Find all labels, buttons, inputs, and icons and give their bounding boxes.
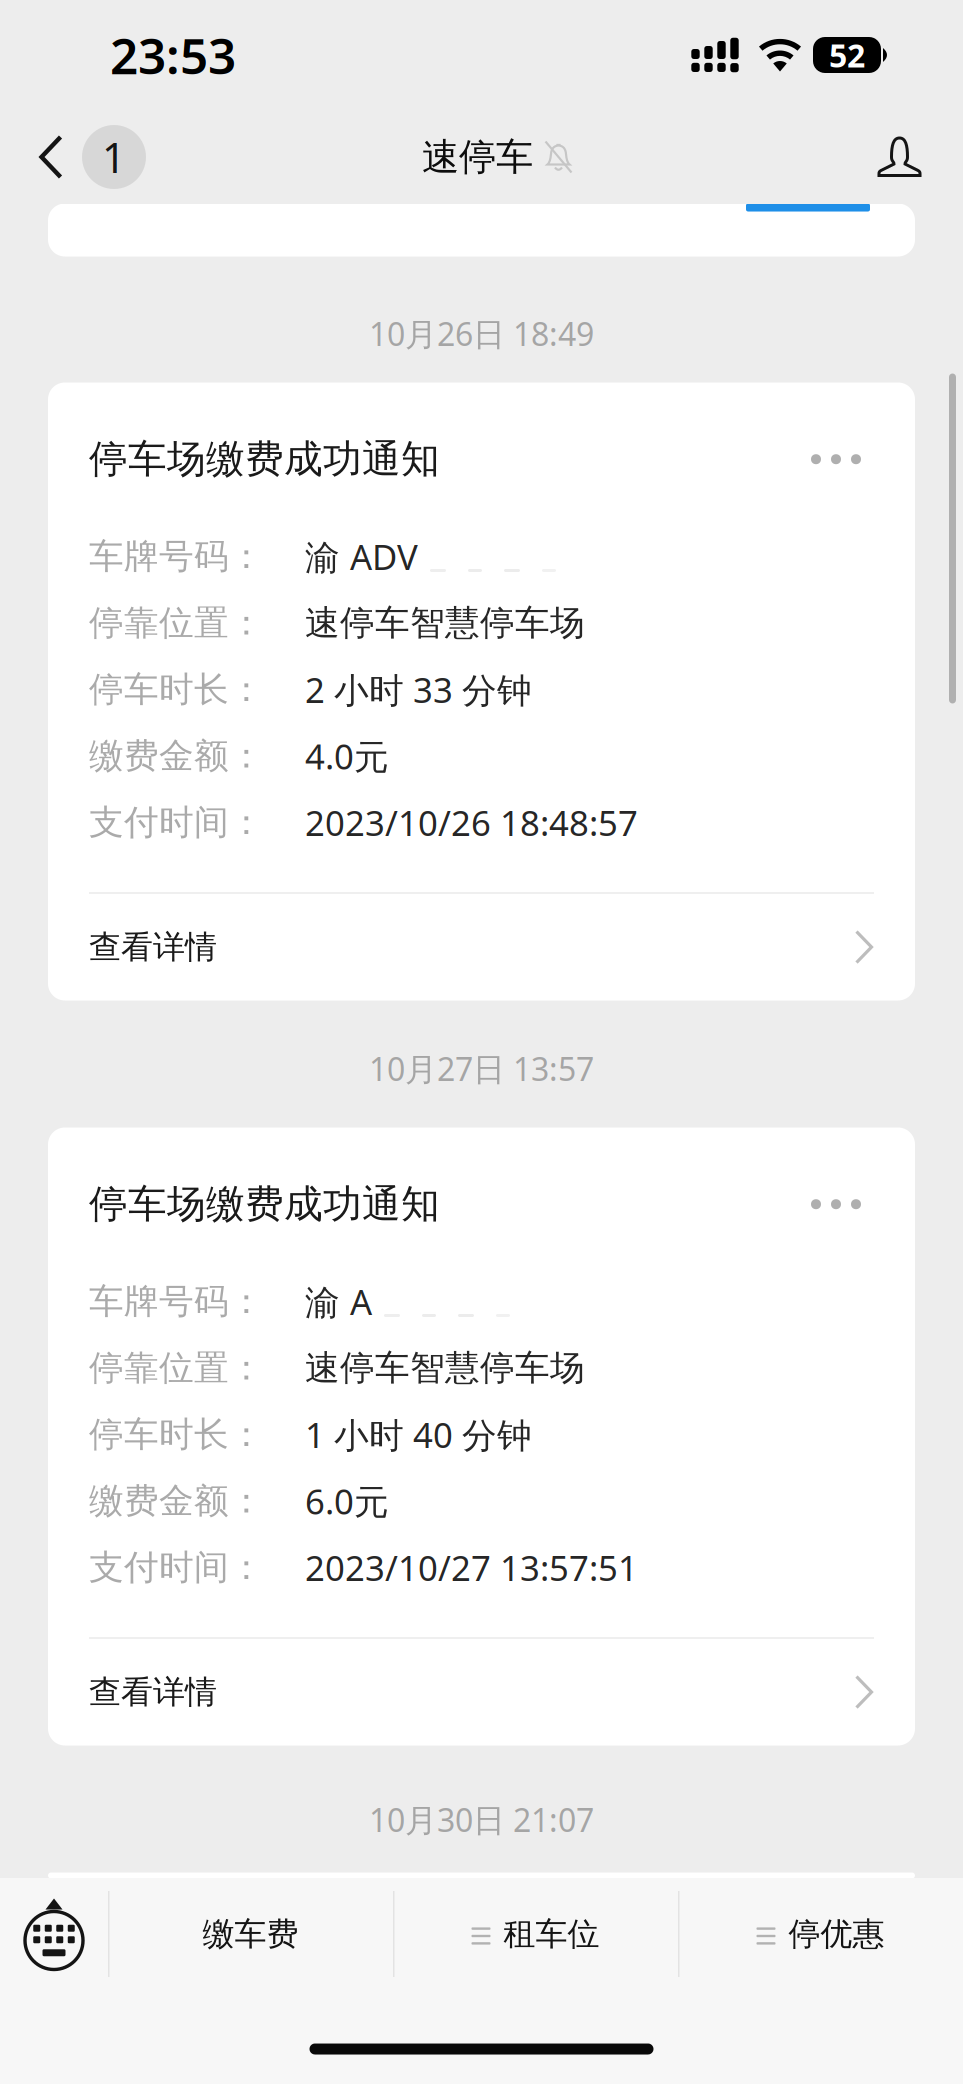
staticText: 停靠位置：	[89, 1347, 264, 1389]
button[interactable]: Keyboard	[0, 1878, 108, 1990]
button[interactable]: More options	[798, 1173, 874, 1235]
staticText: 支付时间：	[89, 1546, 264, 1589]
staticText: 10月26日 18:49	[369, 312, 594, 355]
staticText: 缴费金额：	[89, 1480, 264, 1522]
staticText: 停优惠	[788, 1914, 884, 1954]
staticText: 租车位	[503, 1914, 599, 1954]
staticText: 支付时间：	[89, 801, 264, 844]
staticText: 速停车智慧停车场	[305, 1347, 585, 1389]
button[interactable]: More options	[798, 428, 874, 490]
staticText: 渝 ADV	[305, 533, 418, 579]
button[interactable]: 查看详情	[89, 1639, 874, 1745]
staticText: 查看详情	[89, 1672, 217, 1712]
button[interactable]: Back	[0, 113, 146, 201]
staticText: 缴车费	[202, 1914, 298, 1954]
staticText: 2023/10/26 18:48:57	[305, 799, 638, 845]
staticText: 停车时长：	[89, 1413, 264, 1456]
staticText: 车牌号码：	[89, 535, 264, 578]
staticText: 缴费金额：	[89, 735, 264, 777]
staticText: 6.0元	[305, 1478, 389, 1524]
button[interactable]: 租车位	[393, 1878, 678, 1990]
staticText: 停车场缴费成功通知	[89, 1180, 440, 1228]
staticText: 停车场缴费成功通知	[89, 435, 440, 483]
staticText: 停车时长：	[89, 668, 264, 711]
staticText: 渝 A	[305, 1278, 372, 1324]
staticText: 车牌号码：	[89, 1280, 264, 1323]
staticText: 速停车	[422, 134, 533, 180]
staticText: 1 小时 40 分钟	[305, 1411, 532, 1457]
staticText: 查看详情	[89, 927, 217, 967]
staticText: 2 小时 33 分钟	[305, 666, 532, 712]
staticText: 10月30日 21:07	[369, 1798, 594, 1841]
button[interactable]: 停优惠	[678, 1878, 963, 1990]
button[interactable]: 缴车费	[108, 1878, 393, 1990]
staticText: 10月27日 13:57	[369, 1047, 594, 1090]
button[interactable]: Profile	[878, 124, 963, 190]
staticText: 23:53	[110, 22, 236, 88]
staticText: 4.0元	[305, 733, 389, 779]
staticText: 2023/10/27 13:57:51	[305, 1544, 638, 1590]
button[interactable]: 查看详情	[89, 894, 874, 1000]
staticText: 速停车智慧停车场	[305, 602, 585, 644]
staticText: 停靠位置：	[89, 602, 264, 644]
staticText: 1	[102, 130, 126, 184]
staticText: 52	[829, 34, 865, 76]
